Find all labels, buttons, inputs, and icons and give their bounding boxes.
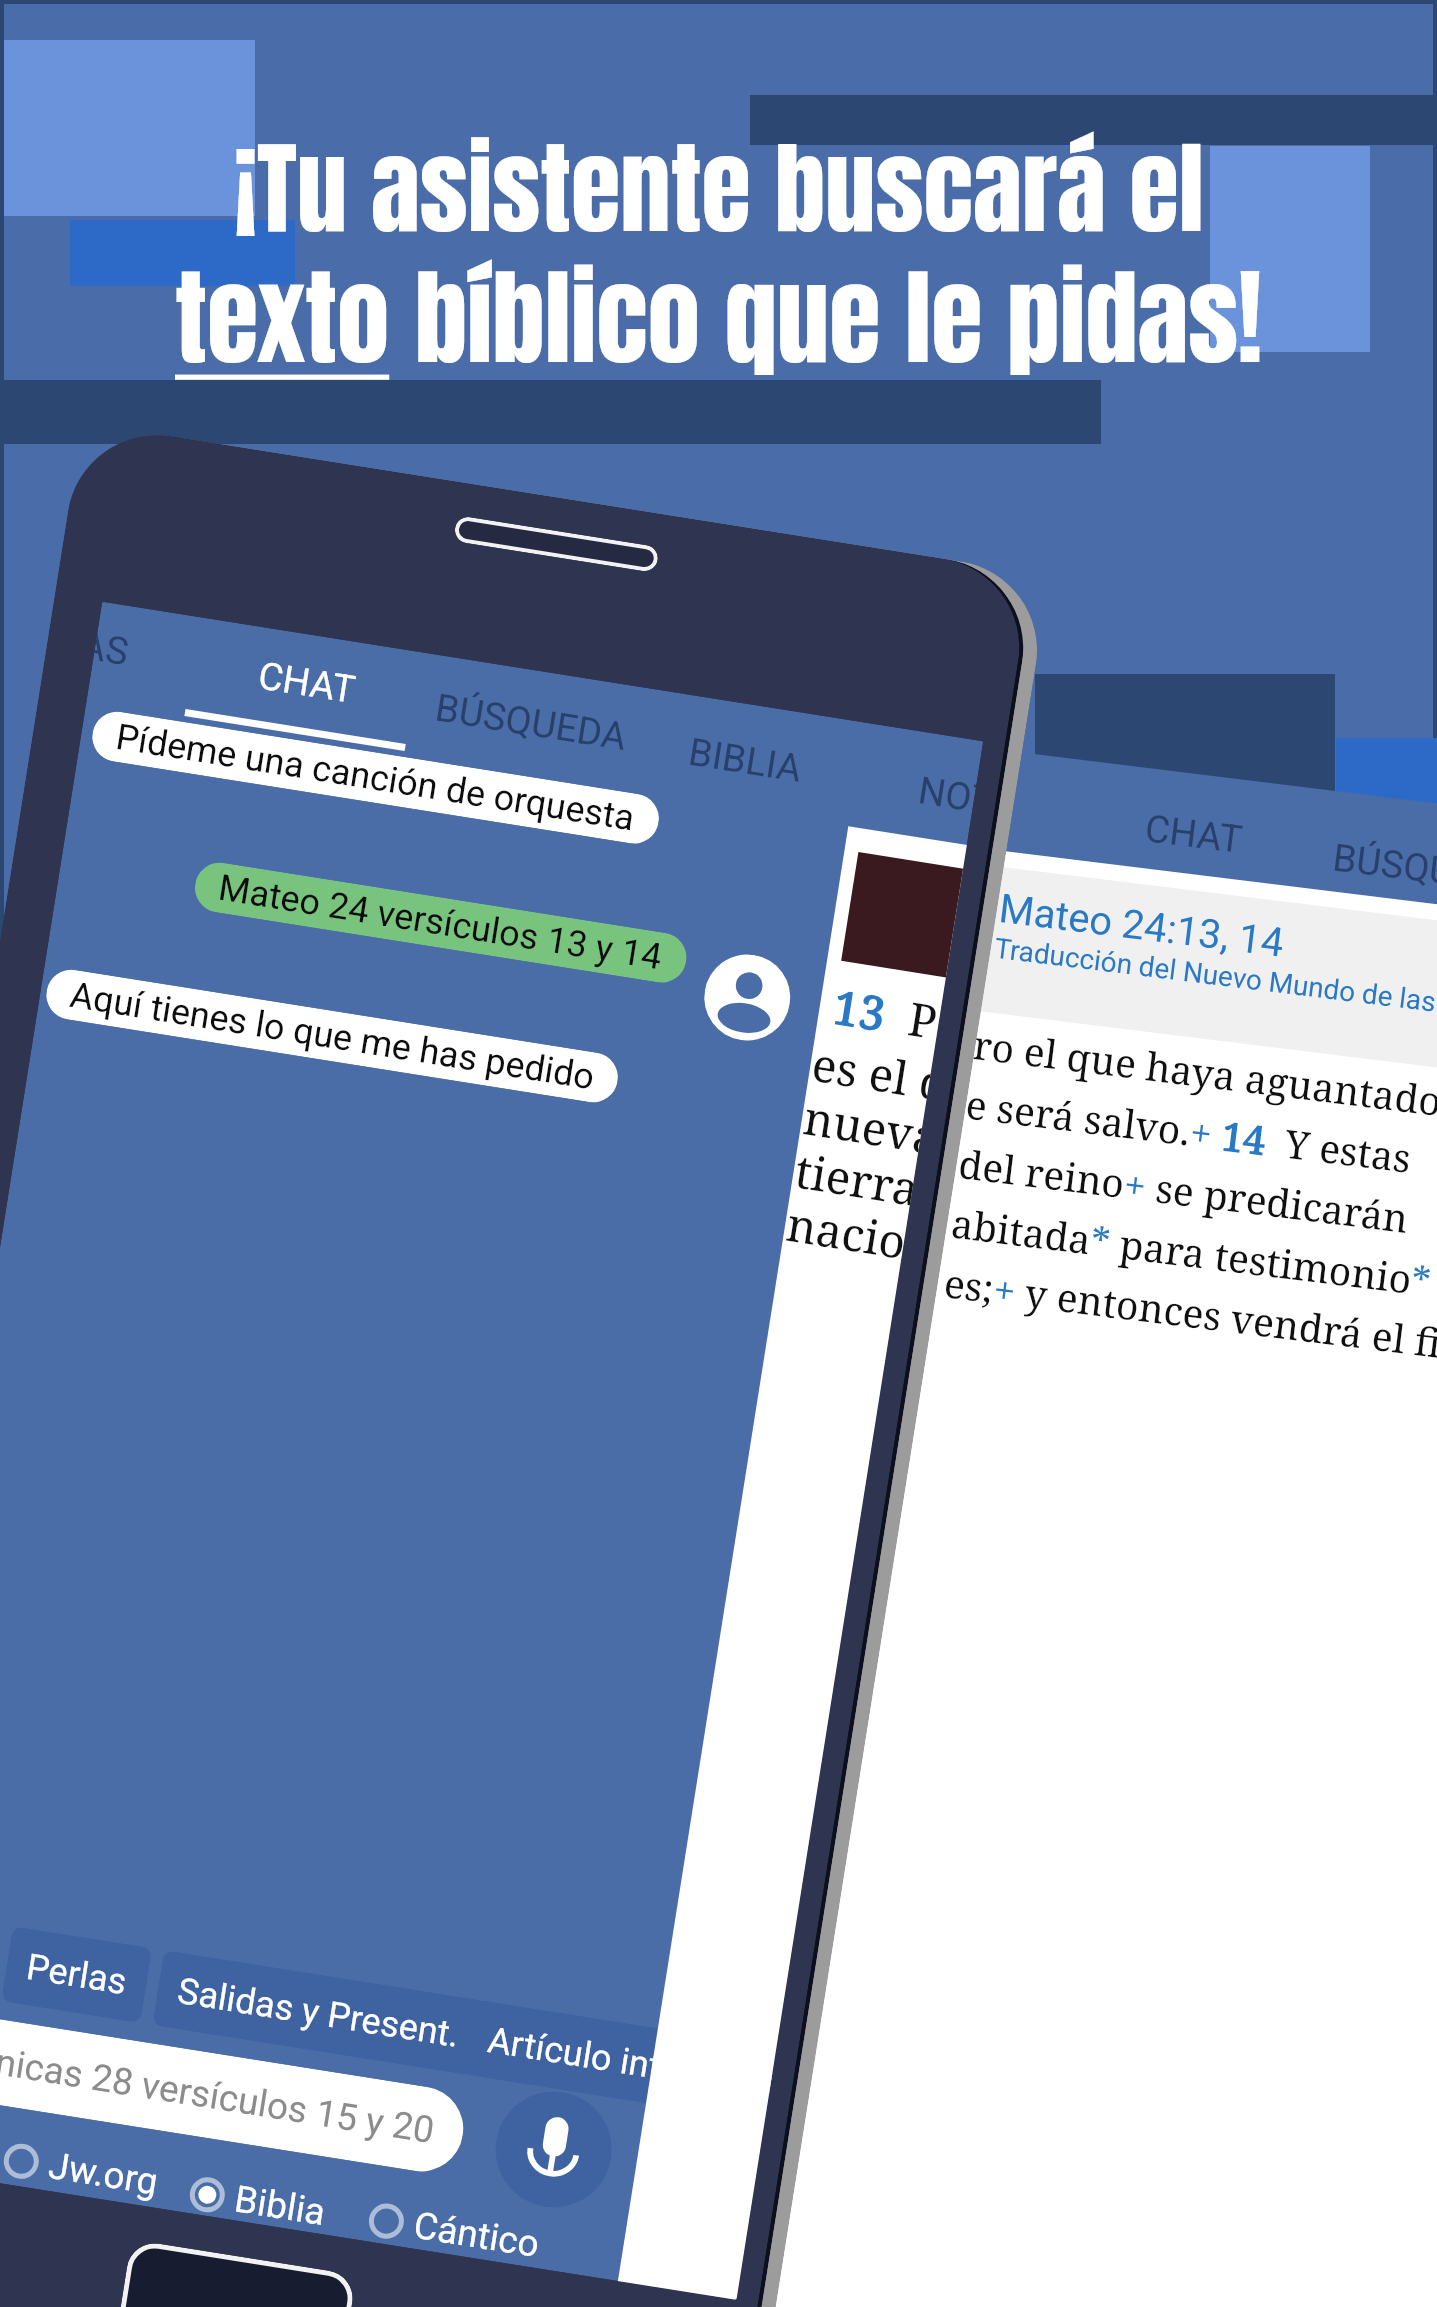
staticText: Traducción del Nuevo Mundo de las Sa xyxy=(992,932,1437,1023)
staticText: Artículo interesante xyxy=(485,2019,774,2105)
button[interactable]: Home xyxy=(114,2239,357,2307)
button[interactable]: BÚSQUEDA xyxy=(1324,829,1437,910)
button[interactable]: Perlas xyxy=(1,1926,152,2023)
staticText: Jw.org xyxy=(46,2144,161,2204)
button[interactable]: NOTAS xyxy=(908,761,979,827)
button[interactable]: Crónicas 28 versículos 15 y 20 xyxy=(0,2010,469,2177)
staticText: BÚSQUEDA xyxy=(432,685,630,760)
staticText: Aquí tienes lo que me has pedido xyxy=(67,974,597,1098)
button[interactable]: CHAT xyxy=(248,646,366,720)
button[interactable]: Cántico xyxy=(365,2197,543,2266)
button[interactable]: AS xyxy=(90,619,139,682)
staticText: CHAT xyxy=(1142,806,1245,863)
staticText: Biblia xyxy=(232,2177,328,2234)
staticText: BIBLIA xyxy=(685,730,805,792)
staticText: texto xyxy=(175,238,390,396)
staticText: AS xyxy=(91,625,132,675)
button[interactable]: CHAT xyxy=(1136,800,1252,870)
staticText: 13 xyxy=(829,975,890,1045)
button[interactable]: Jw.org xyxy=(0,2137,161,2204)
staticText: Crónicas 28 versículos 15 y 20 xyxy=(0,2031,437,2152)
staticText: Salidas y Present. xyxy=(175,1970,463,2056)
staticText: bíblico que le pidas! xyxy=(390,238,1263,396)
staticText: Mateo 24:13, 14 xyxy=(996,885,1287,967)
staticText: es el que será salvo. nueva+ del reino+ … xyxy=(782,1032,934,1273)
button[interactable]: Aquí tienes lo que me has pedido xyxy=(43,966,621,1106)
button[interactable]: BÚSQUEDA xyxy=(425,679,637,767)
staticText: Cántico xyxy=(411,2204,543,2266)
staticText: Pídeme una canción de orquesta xyxy=(113,716,638,839)
button[interactable]: Voice input xyxy=(487,2083,620,2216)
staticText: Perlas xyxy=(23,1946,130,2003)
staticText: Mateo 24 versículos 13 y 14 xyxy=(216,867,666,978)
button[interactable]: BIBLIA xyxy=(679,723,812,799)
staticText: NOTAS xyxy=(915,768,978,821)
staticText: Pero el que haya xyxy=(880,983,944,1053)
button[interactable]: Biblia xyxy=(186,2170,328,2234)
button[interactable]: Profile xyxy=(698,948,796,1047)
button[interactable]: Mateo 24 versículos 13 y 14 xyxy=(191,859,690,986)
staticText: ¡Tu asistente buscará el xyxy=(234,112,1204,264)
button[interactable]: Pídeme una canción de orquesta xyxy=(89,708,662,847)
staticText: BÚSQUEDA xyxy=(1330,835,1437,904)
button[interactable]: Artículo interesante xyxy=(462,1999,776,2122)
button[interactable]: Salidas y Present. xyxy=(152,1950,485,2076)
staticText: ro el que haya aguantado+ e será salvo.+… xyxy=(941,1017,1437,1373)
staticText: CHAT xyxy=(255,653,359,713)
